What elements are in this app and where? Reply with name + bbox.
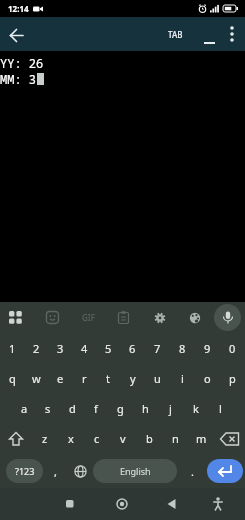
button[interactable]: o bbox=[195, 363, 220, 393]
staticText: l bbox=[219, 401, 222, 416]
staticText: s bbox=[45, 401, 51, 416]
staticText: w bbox=[32, 371, 41, 386]
staticText: 8 bbox=[179, 341, 186, 356]
staticText: MM: 3 bbox=[0, 71, 37, 87]
button[interactable] bbox=[207, 459, 243, 483]
staticText: b bbox=[146, 431, 153, 446]
button[interactable]: f bbox=[84, 393, 108, 423]
staticText: a bbox=[21, 401, 28, 416]
staticText: 12:14 bbox=[8, 3, 29, 14]
staticText: English bbox=[120, 465, 151, 477]
staticText: 1 bbox=[9, 341, 16, 356]
button[interactable]: j bbox=[158, 393, 183, 423]
button[interactable]: n bbox=[162, 423, 188, 454]
button[interactable]: . bbox=[177, 456, 207, 486]
button[interactable]: e bbox=[48, 363, 72, 393]
button[interactable]: s bbox=[36, 393, 60, 423]
button[interactable]: GIF bbox=[75, 304, 102, 331]
button[interactable]: 8 bbox=[170, 333, 195, 363]
button[interactable]: TAB bbox=[164, 21, 187, 48]
staticText: t bbox=[106, 371, 110, 386]
button[interactable] bbox=[219, 17, 245, 51]
button[interactable]: q bbox=[0, 363, 24, 393]
button[interactable] bbox=[108, 488, 136, 520]
button[interactable]: 1 bbox=[0, 333, 24, 363]
button[interactable] bbox=[0, 423, 31, 454]
staticText: 6 bbox=[129, 341, 136, 356]
staticText: d bbox=[69, 401, 76, 416]
staticText: TAB bbox=[168, 29, 183, 40]
button[interactable] bbox=[2, 304, 29, 331]
button[interactable]: 0 bbox=[220, 333, 245, 363]
button[interactable] bbox=[214, 423, 245, 454]
button[interactable] bbox=[199, 17, 219, 51]
button[interactable] bbox=[110, 304, 137, 331]
button[interactable] bbox=[0, 17, 32, 51]
button[interactable]: m bbox=[188, 423, 214, 454]
button[interactable]: z bbox=[31, 423, 58, 454]
button[interactable]: 4 bbox=[72, 333, 96, 363]
button[interactable]: v bbox=[110, 423, 136, 454]
staticText: YY: 26 bbox=[0, 55, 44, 71]
staticText: m bbox=[196, 431, 207, 446]
staticText: f bbox=[94, 401, 98, 416]
staticText: x bbox=[68, 431, 74, 446]
staticText: 0 bbox=[229, 341, 236, 356]
button[interactable] bbox=[146, 304, 173, 331]
button[interactable]: h bbox=[133, 393, 158, 423]
button[interactable]: u bbox=[145, 363, 170, 393]
button[interactable]: 3 bbox=[48, 333, 72, 363]
button[interactable]: t bbox=[96, 363, 120, 393]
button[interactable]: y bbox=[120, 363, 145, 393]
button[interactable]: 7 bbox=[145, 333, 170, 363]
staticText: 3 bbox=[57, 341, 64, 356]
staticText: . bbox=[191, 464, 194, 479]
button[interactable] bbox=[39, 304, 66, 331]
staticText: 7 bbox=[154, 341, 161, 356]
staticText: n bbox=[172, 431, 179, 446]
button[interactable]: r bbox=[72, 363, 96, 393]
staticText: v bbox=[120, 431, 126, 446]
button[interactable]: 5 bbox=[96, 333, 120, 363]
button[interactable]: 9 bbox=[195, 333, 220, 363]
staticText: GIF bbox=[82, 312, 95, 323]
button[interactable]: , bbox=[43, 456, 67, 486]
button[interactable]: x bbox=[58, 423, 84, 454]
button[interactable]: c bbox=[84, 423, 110, 454]
button[interactable]: b bbox=[136, 423, 162, 454]
button[interactable] bbox=[56, 488, 84, 520]
staticText: r bbox=[82, 371, 87, 386]
staticText: p bbox=[229, 371, 236, 386]
staticText: k bbox=[193, 401, 199, 416]
button[interactable]: i bbox=[170, 363, 195, 393]
button[interactable]: ?123 bbox=[6, 459, 43, 483]
button[interactable] bbox=[214, 304, 241, 331]
button[interactable] bbox=[158, 488, 186, 520]
staticText: c bbox=[94, 431, 100, 446]
staticText: i bbox=[181, 371, 184, 386]
button[interactable] bbox=[67, 456, 93, 486]
button[interactable]: English bbox=[93, 459, 177, 483]
staticText: g bbox=[117, 401, 124, 416]
button[interactable] bbox=[181, 304, 208, 331]
staticText: , bbox=[54, 464, 57, 479]
staticText: 5 bbox=[105, 341, 112, 356]
staticText: 4 bbox=[81, 341, 88, 356]
button[interactable]: p bbox=[220, 363, 245, 393]
button[interactable]: k bbox=[183, 393, 208, 423]
staticText: y bbox=[130, 371, 136, 386]
button[interactable]: w bbox=[24, 363, 48, 393]
staticText: 9 bbox=[204, 341, 211, 356]
button[interactable]: l bbox=[208, 393, 233, 423]
staticText: e bbox=[57, 371, 64, 386]
button[interactable]: d bbox=[60, 393, 84, 423]
button[interactable]: a bbox=[12, 393, 36, 423]
button[interactable]: 6 bbox=[120, 333, 145, 363]
button[interactable] bbox=[204, 488, 232, 520]
staticText: h bbox=[142, 401, 149, 416]
staticText: ?123 bbox=[15, 465, 35, 477]
button[interactable]: 2 bbox=[24, 333, 48, 363]
staticText: q bbox=[9, 371, 16, 386]
button[interactable]: g bbox=[108, 393, 133, 423]
staticText: j bbox=[169, 401, 172, 416]
